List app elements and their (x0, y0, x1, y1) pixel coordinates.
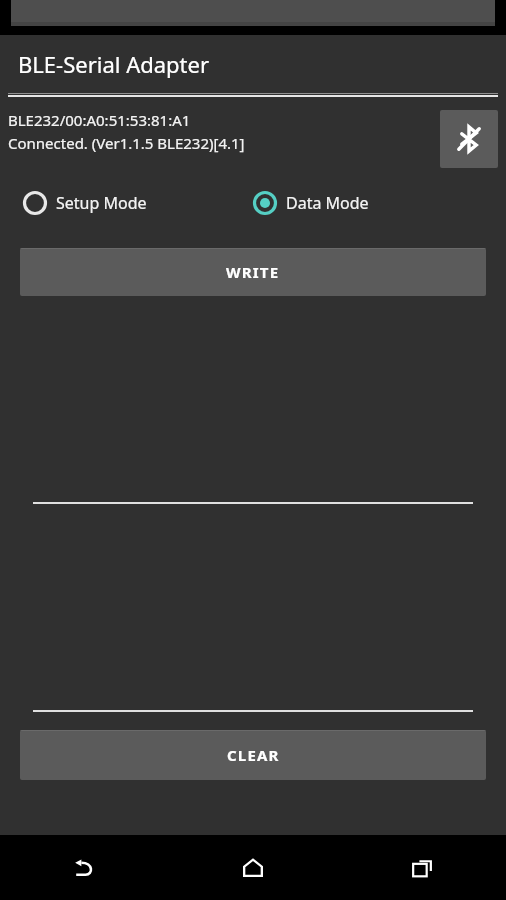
button[interactable]: Data Mode (252, 190, 369, 216)
button[interactable] (33, 507, 473, 712)
button[interactable] (11, 0, 495, 26)
button[interactable]: CLEAR (20, 730, 486, 780)
button[interactable]: WRITE (20, 248, 486, 296)
staticText: Setup Mode (56, 192, 147, 214)
staticText: BLE232/00:A0:51:53:81:A1 (8, 110, 191, 130)
staticText: Connected. (Ver1.1.5 BLE232)[4.1] (8, 133, 245, 153)
button[interactable]: Disconnect Bluetooth (440, 110, 498, 168)
staticText: WRITE (226, 262, 280, 282)
button[interactable]: Recent apps (337, 835, 506, 900)
button[interactable]: Setup Mode (22, 190, 252, 216)
staticText: CLEAR (227, 745, 280, 765)
staticText: BLE-Serial Adapter (18, 49, 210, 79)
button[interactable]: Home (168, 835, 337, 900)
button[interactable]: Back (0, 835, 168, 900)
staticText: Data Mode (286, 192, 369, 214)
button[interactable] (33, 318, 473, 504)
